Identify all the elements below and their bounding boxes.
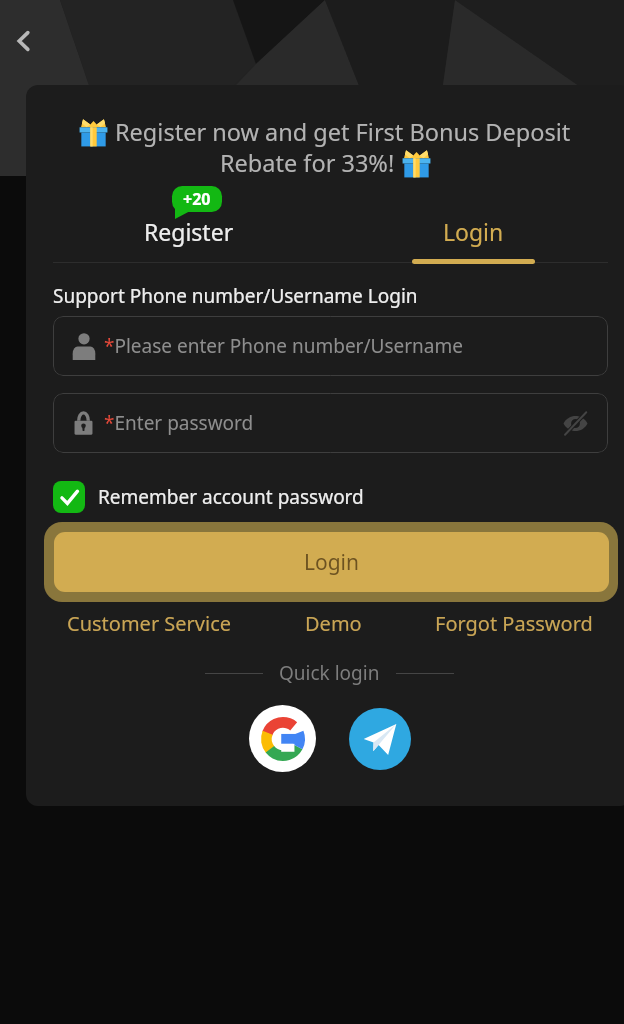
button[interactable]: Login xyxy=(412,206,535,256)
button[interactable]: Sign in with Google xyxy=(249,705,316,772)
button[interactable]: *Enter password xyxy=(53,393,608,453)
staticText: Customer Service xyxy=(67,610,232,637)
button[interactable]: Remember account password xyxy=(53,481,364,513)
staticText: Demo xyxy=(305,610,362,637)
staticText: Register now and get First Bonus Deposit xyxy=(115,116,571,148)
staticText: +20 xyxy=(183,188,211,210)
button[interactable]: Login xyxy=(44,522,618,602)
staticText: Login xyxy=(304,548,360,577)
staticText: Register xyxy=(144,216,234,247)
button[interactable]: Demo xyxy=(305,610,362,637)
staticText: Rebate for 33%! xyxy=(220,147,395,179)
staticText: Quick login xyxy=(279,660,380,686)
staticText: Login xyxy=(443,216,504,247)
button[interactable]: Forgot Password xyxy=(435,610,593,637)
button[interactable]: Customer Service xyxy=(67,610,232,637)
staticText: Remember account password xyxy=(98,484,364,510)
button[interactable]: Show password xyxy=(558,406,592,440)
button[interactable]: Back xyxy=(1,18,47,64)
button[interactable]: Register xyxy=(126,206,251,256)
button[interactable]: Sign in with Telegram xyxy=(349,708,411,770)
staticText: *Enter password xyxy=(104,410,558,436)
button[interactable]: *Please enter Phone number/Username xyxy=(53,316,608,376)
staticText: Support Phone number/Username Login xyxy=(53,283,418,309)
staticText: Forgot Password xyxy=(435,610,593,637)
staticText: *Please enter Phone number/Username xyxy=(104,333,463,359)
